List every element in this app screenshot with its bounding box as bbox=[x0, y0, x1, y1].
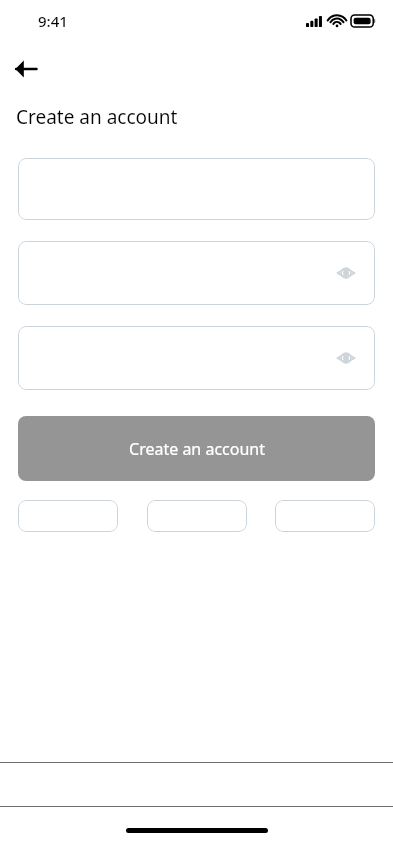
button[interactable]: Show password bbox=[332, 344, 360, 372]
button[interactable]: Show password bbox=[332, 259, 360, 287]
staticText: 9:41 bbox=[38, 11, 68, 31]
staticText: Create an account bbox=[129, 438, 265, 460]
button[interactable]: Create an account bbox=[18, 416, 375, 481]
button[interactable]: Back bbox=[6, 53, 46, 85]
button[interactable]: Text field bbox=[18, 158, 375, 220]
button[interactable]: Password field bbox=[18, 326, 375, 390]
button[interactable]: Password field bbox=[18, 241, 375, 305]
button[interactable]: Option bbox=[18, 500, 118, 532]
staticText: Create an account bbox=[16, 104, 178, 130]
button[interactable]: Option bbox=[275, 500, 375, 532]
button[interactable]: Option bbox=[147, 500, 247, 532]
